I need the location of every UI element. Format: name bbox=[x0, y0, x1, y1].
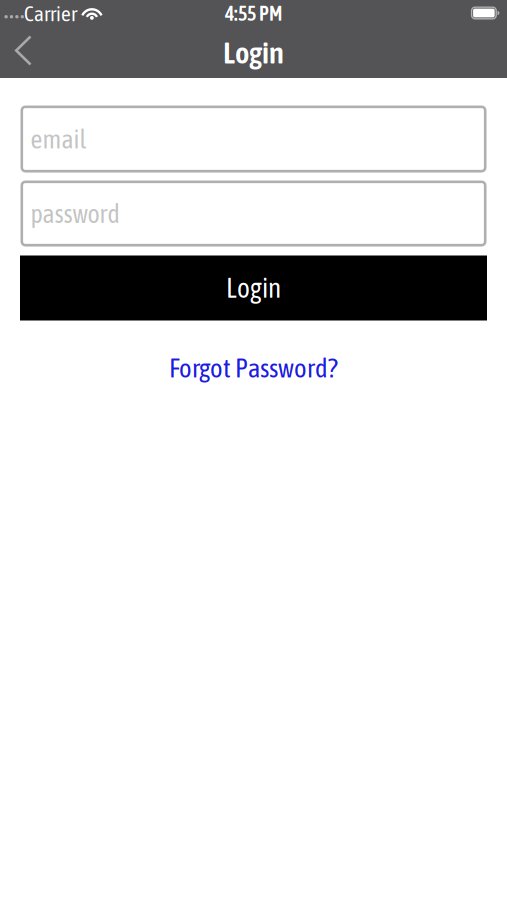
staticText: Forgot Password? bbox=[169, 352, 338, 383]
staticText: Login bbox=[223, 35, 284, 70]
staticText: Carrier bbox=[24, 1, 77, 26]
staticText: email bbox=[30, 124, 86, 154]
staticText: 4:55 PM bbox=[225, 2, 282, 25]
staticText: password bbox=[30, 199, 119, 228]
staticText: Login bbox=[226, 272, 281, 304]
